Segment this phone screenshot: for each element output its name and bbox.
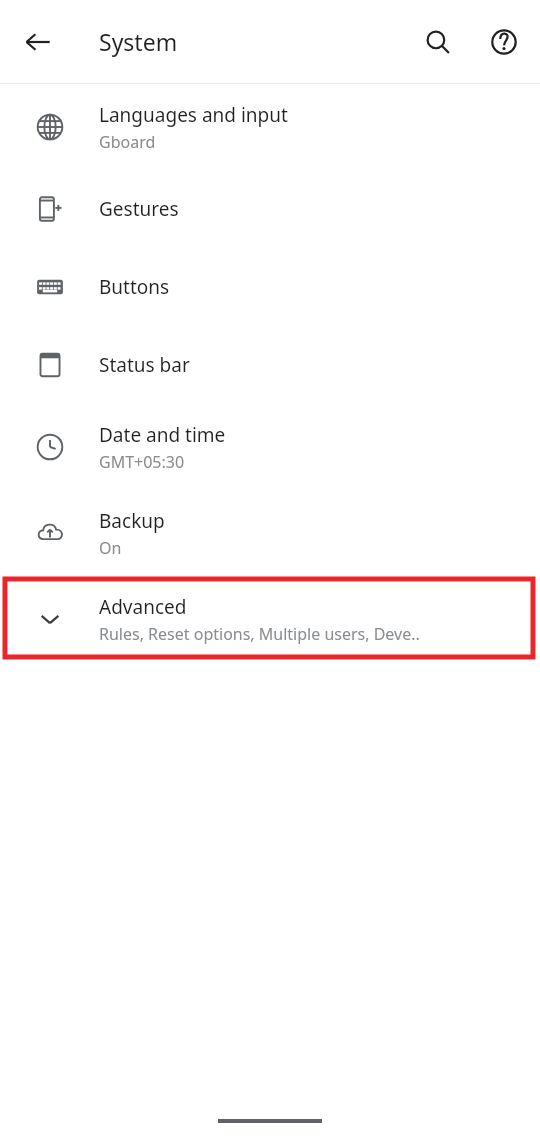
staticText: Buttons — [99, 274, 170, 300]
staticText: Languages and input — [99, 102, 288, 128]
staticText: System — [99, 26, 178, 57]
staticText: Status bar — [99, 352, 190, 378]
staticText: On — [99, 537, 122, 559]
staticText: Advanced — [99, 594, 187, 620]
button[interactable]: Search — [414, 18, 462, 66]
button[interactable]: Status bar — [0, 326, 540, 404]
button[interactable]: Languages and input — [0, 84, 540, 170]
button[interactable]: Backup — [0, 490, 540, 576]
button[interactable]: Help — [480, 18, 528, 66]
staticText: Date and time — [99, 422, 226, 448]
staticText: Rules, Reset options, Multiple users, De… — [99, 623, 420, 645]
staticText: Backup — [99, 508, 165, 534]
button[interactable]: Back — [14, 18, 62, 66]
staticText: Gboard — [99, 131, 156, 153]
button[interactable]: Advanced — [0, 576, 540, 662]
staticText: GMT+05:30 — [99, 451, 185, 473]
button[interactable]: Buttons — [0, 248, 540, 326]
staticText: Gestures — [99, 196, 179, 222]
button[interactable]: Gestures — [0, 170, 540, 248]
button[interactable]: Date and time — [0, 404, 540, 490]
